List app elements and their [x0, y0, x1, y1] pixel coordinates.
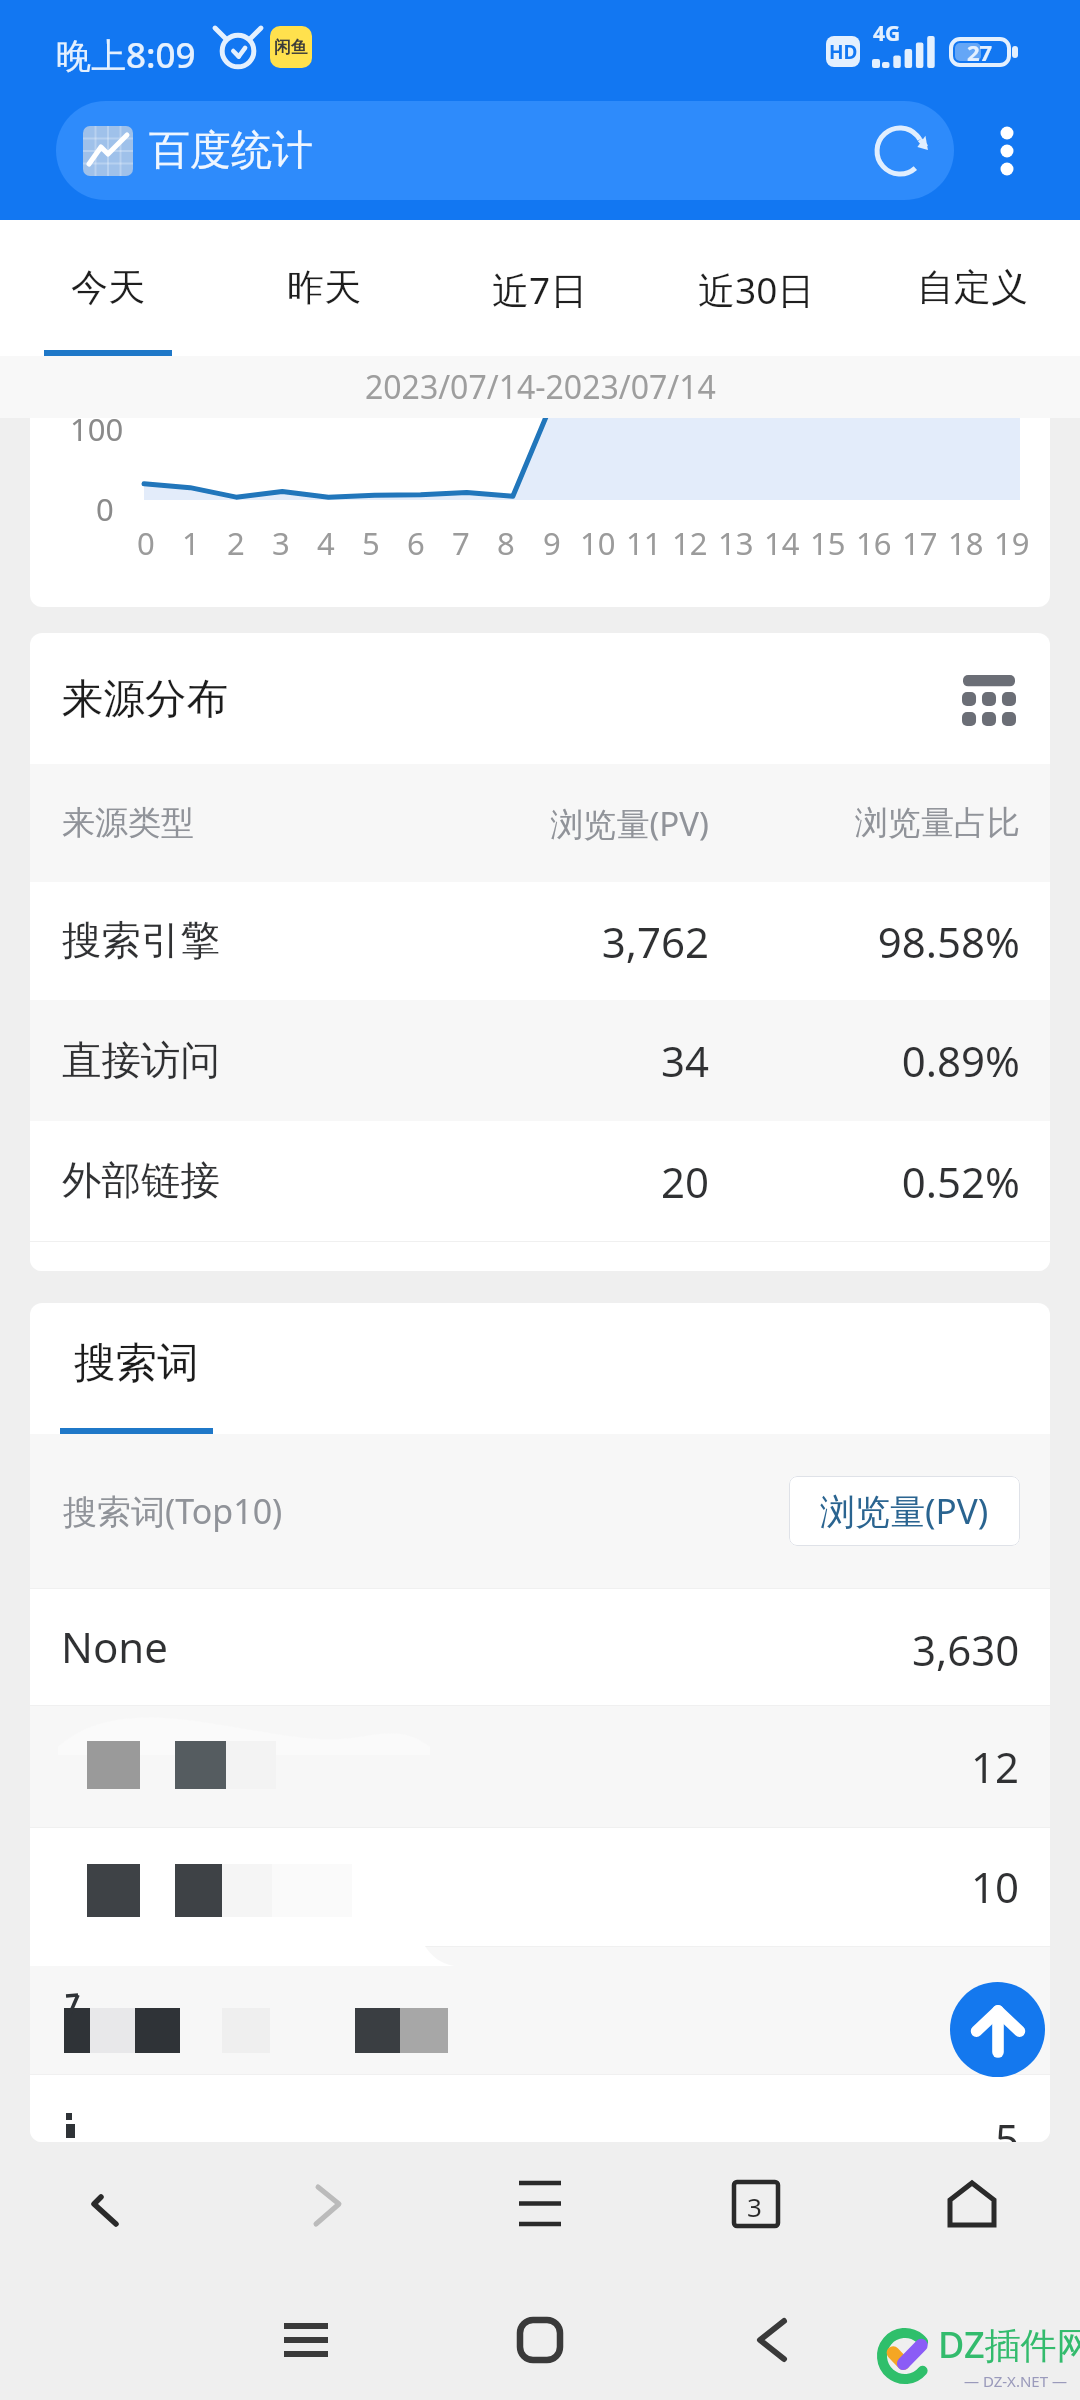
staticText: 外部链接 [62, 1156, 493, 1206]
staticText: 10 [580, 522, 616, 564]
staticText: — DZ-X.NET — [964, 2371, 1067, 2391]
button[interactable]: Back [712, 2280, 832, 2400]
staticText: DZ插件网 [938, 2320, 1080, 2369]
button[interactable]: 自定义 [864, 220, 1080, 356]
staticText: 11 [626, 522, 662, 564]
staticText: 0 [96, 488, 114, 530]
staticText: 27 [967, 37, 993, 67]
button[interactable]: Back [55, 2144, 155, 2244]
staticText: 近30日 [698, 264, 815, 315]
staticText: 5 [995, 2110, 1020, 2142]
button[interactable]: 来源类型 [30, 764, 1050, 882]
staticText: 百度统计 [149, 125, 313, 177]
staticText: 6 [407, 522, 425, 564]
staticText: 3,762 [493, 913, 709, 970]
button[interactable]: 外部链接 [30, 1121, 1050, 1241]
button[interactable]: Refresh [856, 107, 944, 195]
staticText: 7 [452, 522, 470, 564]
staticText: 直接访问 [62, 1036, 493, 1086]
staticText: 3,630 [912, 1621, 1020, 1678]
button[interactable]: 近30日 [648, 220, 864, 356]
staticText: 8 [497, 522, 515, 564]
staticText: 2023/07/14-2023/07/14 [365, 365, 716, 409]
staticText: 浏览量(PV) [820, 1487, 989, 1535]
button[interactable]: 12 [30, 1705, 1050, 1827]
staticText: 16 [856, 522, 892, 564]
button[interactable]: 直接访问 [30, 1000, 1050, 1121]
staticText: 搜索词 [74, 1337, 199, 1389]
button[interactable]: Menu [490, 2144, 590, 2244]
staticText: 0 [137, 522, 155, 564]
staticText: 搜索引擎 [62, 916, 493, 966]
staticText: 14 [764, 522, 800, 564]
staticText: 98.58% [741, 913, 1020, 970]
staticText: 3 [747, 2189, 762, 2224]
staticText: 20 [493, 1153, 709, 1210]
staticText: 17 [902, 522, 938, 564]
staticText: 1 [182, 522, 200, 564]
staticText: 浏览量占比 [741, 802, 1020, 844]
staticText: 19 [994, 522, 1030, 564]
staticText: None [61, 1618, 168, 1675]
button[interactable] [30, 1946, 1050, 2074]
button[interactable]: 搜索引擎 [30, 882, 1050, 1000]
staticText: 4 [317, 522, 335, 564]
staticText: 2 [227, 522, 245, 564]
staticText: 昨天 [287, 264, 361, 311]
staticText: 12 [971, 1738, 1020, 1795]
staticText: 15 [810, 522, 846, 564]
button[interactable]: None [30, 1588, 1050, 1705]
staticText: 近7日 [492, 264, 588, 315]
staticText: 今天 [71, 264, 145, 311]
button[interactable]: Forward [278, 2144, 378, 2244]
button[interactable]: Home [480, 2280, 600, 2400]
staticText: 0.89% [741, 1032, 1020, 1089]
staticText: 12 [672, 522, 708, 564]
staticText: 13 [718, 522, 754, 564]
staticText: 10 [971, 1858, 1020, 1915]
staticText: 100 [70, 418, 124, 450]
button[interactable]: 昨天 [216, 220, 432, 356]
staticText: 4G [873, 19, 901, 48]
button[interactable]: Table view [954, 664, 1024, 734]
staticText: 34 [493, 1032, 709, 1089]
button[interactable]: 近7日 [432, 220, 648, 356]
button[interactable]: Recent apps [246, 2280, 366, 2400]
staticText: HD [829, 39, 858, 65]
button[interactable]: 百度统计 [56, 101, 954, 200]
staticText: 自定义 [917, 264, 1028, 311]
staticText: 来源类型 [62, 802, 493, 844]
staticText: 浏览量(PV) [493, 801, 709, 846]
staticText: 18 [948, 522, 984, 564]
staticText: 搜索词(Top10) [63, 1488, 789, 1534]
staticText: 来源分布 [62, 673, 228, 725]
staticText: 9 [543, 522, 561, 564]
button[interactable]: 今天 [0, 220, 216, 356]
button[interactable]: More options [974, 101, 1040, 200]
staticText: 0.52% [741, 1153, 1020, 1210]
button[interactable]: Scroll to top [950, 1982, 1045, 2077]
staticText: 晚上8:09 [56, 31, 196, 79]
button[interactable]: 5 [30, 2074, 1050, 2142]
staticText: 闲鱼 [274, 37, 308, 58]
staticText: 5 [362, 522, 380, 564]
button[interactable]: 浏览量(PV) [789, 1476, 1020, 1546]
button[interactable]: Tabs [705, 2144, 805, 2244]
staticText: 3 [272, 522, 290, 564]
button[interactable]: 10 [30, 1827, 1050, 1946]
button[interactable]: Home page [922, 2144, 1022, 2244]
